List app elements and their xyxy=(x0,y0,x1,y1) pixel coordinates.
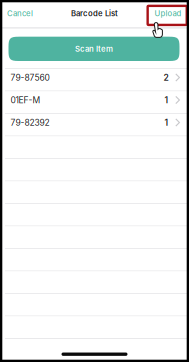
button[interactable]: Scan Item xyxy=(8,37,179,61)
staticText: 1 xyxy=(165,95,169,105)
staticText: 79-87560 xyxy=(11,72,50,83)
staticText: 01EF-M xyxy=(11,95,41,105)
staticText: Barcode List xyxy=(71,9,118,18)
staticText: 1 xyxy=(165,117,169,128)
staticText: Upload xyxy=(154,9,181,18)
button[interactable]: 01EF-M xyxy=(0,91,189,113)
staticText: 79-82392 xyxy=(11,117,50,128)
staticText: 2 xyxy=(164,72,169,83)
button[interactable]: 79-82392 xyxy=(0,114,189,135)
button[interactable]: 79-87560 xyxy=(0,69,189,90)
button[interactable]: Cancel xyxy=(0,2,40,25)
staticText: Scan Item xyxy=(75,44,113,54)
button[interactable]: Upload xyxy=(147,2,189,25)
staticText: Cancel xyxy=(7,9,33,18)
